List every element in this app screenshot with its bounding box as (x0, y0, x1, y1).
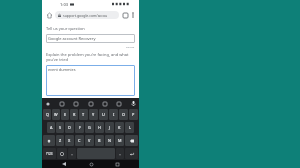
staticText: E (64, 112, 67, 117)
button[interactable]: Keyboard tool (115, 100, 122, 107)
button[interactable]: Comma (68, 148, 76, 159)
button[interactable]: Voice input (129, 99, 137, 107)
staticText: D (68, 125, 71, 130)
button[interactable]: R (70, 109, 78, 120)
staticText: I (113, 112, 115, 117)
staticText: M (118, 138, 122, 143)
staticText: R (73, 112, 76, 117)
staticText: Tell us your question (46, 26, 85, 31)
button[interactable]: P (129, 109, 138, 120)
staticText: Z (59, 138, 62, 143)
button[interactable]: More options (129, 11, 136, 18)
button[interactable]: L (125, 122, 134, 133)
staticText: J (109, 125, 111, 130)
staticText: F (79, 125, 81, 130)
staticText: O (122, 112, 125, 117)
button[interactable]: D (65, 122, 74, 133)
button[interactable]: O (119, 109, 128, 120)
staticText: event dummies (48, 67, 76, 72)
button[interactable]: C (75, 135, 84, 146)
button[interactable]: F (75, 122, 84, 133)
button[interactable]: Period (116, 148, 124, 159)
staticText: Q (46, 112, 49, 117)
button[interactable]: T (79, 109, 88, 120)
button[interactable]: Keyboard tool (87, 100, 94, 107)
staticText: H (98, 125, 101, 130)
button[interactable]: Shift (43, 135, 55, 146)
button[interactable]: S (56, 122, 64, 133)
button[interactable]: Share (121, 11, 129, 19)
staticText: T (82, 112, 85, 117)
button[interactable]: Keyboard tool (72, 100, 79, 107)
button[interactable]: Recents (113, 160, 121, 168)
staticText: U (102, 112, 105, 117)
staticText: L (129, 125, 131, 130)
button[interactable]: U (99, 109, 108, 120)
button[interactable]: E (61, 109, 69, 120)
staticText: X (68, 138, 71, 143)
staticText: S (59, 125, 62, 130)
button[interactable]: ?123 (43, 148, 56, 159)
button[interactable]: event dummies (46, 65, 135, 96)
staticText: P (132, 112, 135, 117)
button[interactable]: W (52, 109, 60, 120)
staticText: ?123 (46, 152, 53, 156)
button[interactable]: Keyboard tool (101, 100, 108, 107)
button[interactable]: J (105, 122, 114, 133)
button[interactable]: A (47, 122, 55, 133)
button[interactable]: M (115, 135, 124, 146)
button[interactable]: G (85, 122, 94, 133)
button[interactable]: Google account Recovery (46, 34, 135, 43)
button[interactable]: Gboard settings (44, 100, 51, 107)
button[interactable]: I (109, 109, 118, 120)
button[interactable]: N (105, 135, 114, 146)
staticText: B (98, 138, 101, 143)
staticText: 1:03 (60, 2, 68, 7)
button[interactable]: Emoji (57, 148, 67, 159)
staticText: A (50, 125, 53, 130)
button[interactable]: B (95, 135, 104, 146)
staticText: Google account Recovery (48, 36, 96, 41)
staticText: 23/100 (126, 45, 135, 48)
staticText: K (118, 125, 121, 130)
button[interactable]: Home (45, 11, 53, 19)
button[interactable]: Z (56, 135, 64, 146)
button[interactable]: K (115, 122, 124, 133)
staticText: C (78, 138, 81, 143)
staticText: G (88, 125, 91, 130)
staticText: support.google.com/accou (63, 13, 108, 18)
staticText: Explain the problem you're facing, and w… (46, 52, 135, 62)
button[interactable]: Home (87, 160, 95, 168)
button[interactable]: Backspace (125, 135, 138, 146)
staticText: Y (92, 112, 95, 117)
button[interactable]: Keyboard tool (58, 100, 65, 107)
staticText: V (88, 138, 91, 143)
button[interactable]: Back (60, 160, 68, 168)
button[interactable]: V (85, 135, 94, 146)
button[interactable]: Enter (125, 148, 138, 159)
button[interactable]: Q (43, 109, 51, 120)
staticText: N (108, 138, 111, 143)
button[interactable]: support.google.com/accou (55, 11, 119, 19)
button[interactable]: Y (89, 109, 98, 120)
button[interactable]: H (95, 122, 104, 133)
staticText: W (54, 112, 58, 117)
button[interactable]: X (65, 135, 74, 146)
